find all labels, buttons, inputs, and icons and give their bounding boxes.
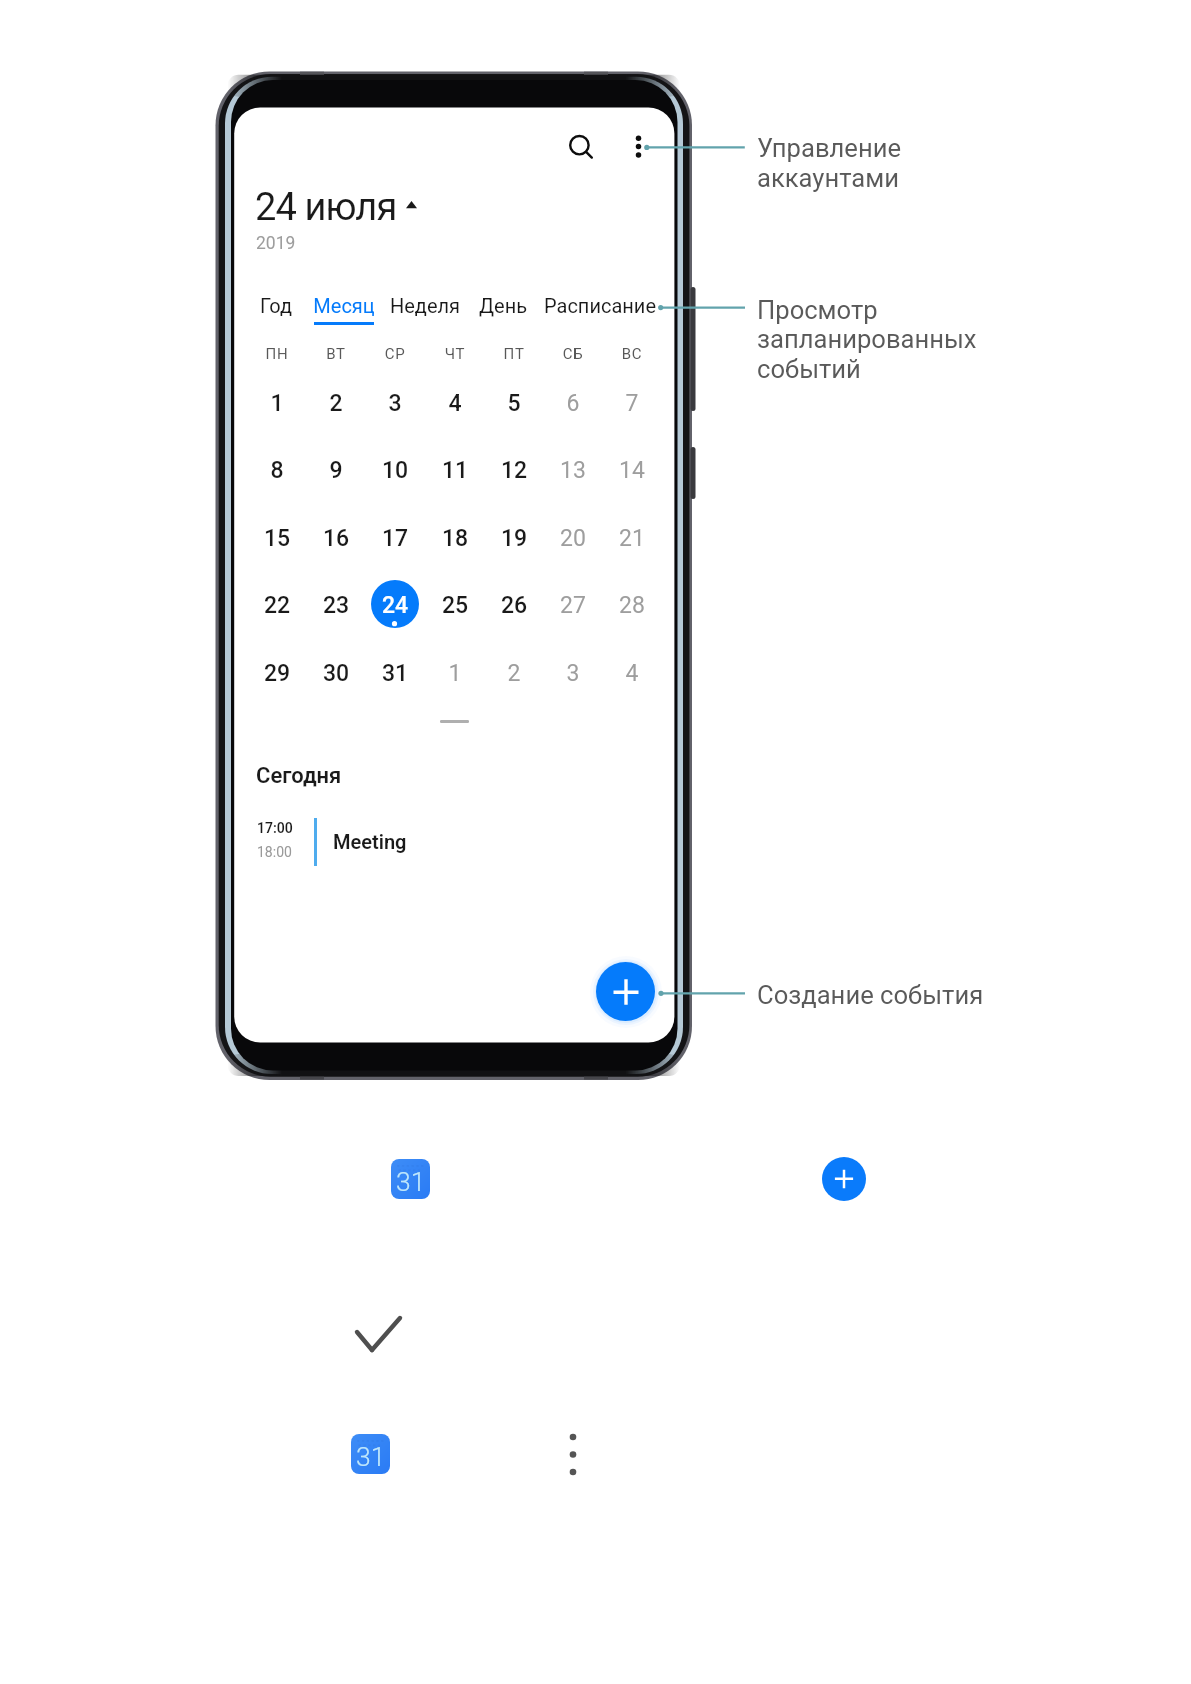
staticText: 22 [247, 592, 307, 632]
button[interactable]: 9 [306, 457, 366, 497]
staticText: 27 [543, 592, 603, 632]
staticText: 3 [543, 660, 603, 700]
staticText: 4 [602, 660, 662, 700]
button[interactable]: 31 [365, 660, 425, 700]
button[interactable]: 7 [602, 390, 662, 430]
staticText: СР [365, 345, 425, 363]
button[interactable]: 20 [543, 525, 603, 565]
button[interactable]: 2 [306, 390, 366, 430]
staticText: 5 [484, 390, 544, 430]
staticText: запланированных [757, 324, 977, 354]
staticText: 17 [365, 525, 425, 565]
button[interactable]: 28 [602, 592, 662, 632]
button[interactable]: 29 [247, 660, 307, 700]
staticText: 21 [602, 525, 662, 565]
button[interactable]: День [462, 294, 544, 324]
button[interactable]: 11 [425, 457, 485, 497]
staticText: 18:00 [257, 844, 292, 860]
button[interactable]: 1 [425, 660, 485, 700]
staticText: Meeting [333, 830, 407, 853]
staticText: аккаунтами [757, 163, 899, 193]
staticText: 25 [425, 592, 485, 632]
button[interactable]: 15 [247, 525, 307, 565]
button[interactable]: Месяц [299, 294, 389, 324]
staticText: ПТ [484, 345, 544, 363]
staticText: ПН [247, 345, 307, 363]
button[interactable]: 16 [306, 525, 366, 565]
staticText: 9 [306, 457, 366, 497]
button[interactable]: Done [352, 1312, 408, 1368]
button[interactable]: Неделя [368, 294, 482, 324]
staticText: 24 [365, 592, 425, 632]
staticText: 31 [396, 1166, 426, 1197]
staticText: 2 [306, 390, 366, 430]
staticText: 30 [306, 660, 366, 700]
button[interactable]: 8 [247, 457, 307, 497]
staticText: ЧТ [425, 345, 485, 363]
button[interactable]: 2 [484, 660, 544, 700]
staticText: Месяц [299, 294, 389, 324]
button[interactable]: 22 [247, 592, 307, 632]
button[interactable]: 19 [484, 525, 544, 565]
staticText: 18 [425, 525, 485, 565]
staticText: 12 [484, 457, 544, 497]
staticText: 4 [425, 390, 485, 430]
button[interactable]: 17 [365, 525, 425, 565]
staticText: СБ [543, 345, 603, 363]
button[interactable]: 4 [425, 390, 485, 430]
button[interactable]: 3 [365, 390, 425, 430]
staticText: 31 [365, 660, 425, 700]
staticText: 14 [602, 457, 662, 497]
button[interactable]: Год [241, 294, 311, 324]
staticText: Неделя [368, 294, 482, 324]
button[interactable]: Add [822, 1157, 866, 1201]
staticText: 17:00 [257, 820, 293, 836]
staticText: 6 [543, 390, 603, 430]
staticText: Год [241, 294, 311, 324]
staticText: 1 [247, 390, 307, 430]
button[interactable]: 18 [425, 525, 485, 565]
button[interactable]: Calendar [351, 1434, 390, 1474]
staticText: День [462, 294, 544, 324]
button[interactable]: 27 [543, 592, 603, 632]
button[interactable]: 13 [543, 457, 603, 497]
staticText: Просмотр [757, 295, 878, 325]
staticText: 2 [484, 660, 544, 700]
button[interactable]: 21 [602, 525, 662, 565]
staticText: 11 [425, 457, 485, 497]
staticText: ВС [602, 345, 662, 363]
staticText: Создание события [757, 980, 984, 1010]
button[interactable]: 4 [602, 660, 662, 700]
button[interactable]: 14 [602, 457, 662, 497]
button[interactable]: 25 [425, 592, 485, 632]
staticText: 31 [356, 1441, 386, 1472]
staticText: Расписание [525, 294, 675, 324]
button[interactable]: Расписание [525, 294, 675, 324]
button[interactable]: 12 [484, 457, 544, 497]
staticText: Управление [757, 133, 901, 163]
staticText: 10 [365, 457, 425, 497]
staticText: 23 [306, 592, 366, 632]
button[interactable]: 30 [306, 660, 366, 700]
button[interactable]: 24 [365, 592, 425, 632]
button[interactable]: 10 [365, 457, 425, 497]
staticText: событий [757, 354, 861, 384]
button[interactable]: 5 [484, 390, 544, 430]
button[interactable]: Calendar [391, 1159, 430, 1199]
staticText: 19 [484, 525, 544, 565]
button[interactable]: 6 [543, 390, 603, 430]
button[interactable]: Create event [596, 962, 655, 1021]
button[interactable]: 24 июля [255, 185, 417, 230]
staticText: 7 [602, 390, 662, 430]
button[interactable]: More options [560, 1424, 588, 1484]
staticText: 28 [602, 592, 662, 632]
button[interactable]: Search [555, 121, 604, 170]
staticText: 13 [543, 457, 603, 497]
staticText: 3 [365, 390, 425, 430]
button[interactable]: 26 [484, 592, 544, 632]
button[interactable]: More options [618, 122, 660, 170]
button[interactable]: 1 [247, 390, 307, 430]
button[interactable]: 3 [543, 660, 603, 700]
button[interactable]: 23 [306, 592, 366, 632]
button[interactable]: 17:00 [250, 813, 650, 871]
